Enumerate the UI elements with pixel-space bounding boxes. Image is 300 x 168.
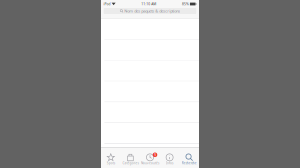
button[interactable]: Nom des paquets & descriptions: [101, 8, 199, 19]
staticText: Spots: [107, 161, 115, 165]
staticText: Catégories: [122, 161, 138, 165]
button[interactable]: Infos: [160, 147, 179, 168]
staticText: 11:10 AM: [141, 2, 156, 6]
staticText: Recherche: [182, 161, 197, 165]
staticText: Nom des paquets & descriptions: [124, 8, 180, 14]
button[interactable]: [101, 123, 199, 144]
button[interactable]: Recherche: [179, 147, 199, 168]
button[interactable]: Spots: [101, 147, 121, 168]
staticText: Nouveautés: [141, 161, 159, 165]
staticText: 1: [154, 152, 156, 157]
staticText: iPod: [104, 2, 111, 6]
button[interactable]: 1: [140, 147, 160, 168]
button[interactable]: Catégories: [121, 147, 140, 168]
staticText: Infos: [166, 161, 173, 165]
staticText: 85%: [182, 2, 189, 6]
